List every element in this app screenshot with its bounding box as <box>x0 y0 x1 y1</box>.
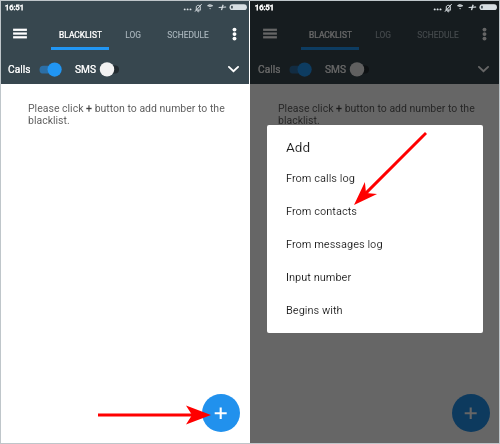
button[interactable]: More options <box>223 21 246 48</box>
button[interactable]: SCHEDULE <box>163 18 212 51</box>
staticText: SCHEDULE <box>417 30 459 40</box>
button[interactable]: From contacts <box>267 195 483 228</box>
button[interactable]: SCHEDULE <box>413 18 462 51</box>
staticText: Input number <box>286 271 352 284</box>
staticText: Add <box>286 139 311 155</box>
button[interactable]: LOG <box>115 18 151 51</box>
button[interactable]: BLACKLIST <box>300 18 360 51</box>
staticText: LOG <box>375 30 391 40</box>
button[interactable]: SMS filter toggle <box>96 60 124 78</box>
staticText: Calls <box>8 64 31 76</box>
staticText: Calls <box>258 64 281 76</box>
staticText: BLACKLIST <box>59 30 102 40</box>
button[interactable]: SMS filter toggle <box>346 60 374 78</box>
staticText: SCHEDULE <box>167 30 209 40</box>
button[interactable]: Expand filters <box>222 59 245 79</box>
staticText: Begins with <box>286 304 343 317</box>
button[interactable]: Calls filter toggle <box>36 60 64 78</box>
staticText: From calls log <box>286 172 355 185</box>
button[interactable]: Add number <box>202 394 240 432</box>
button[interactable]: BLACKLIST <box>50 18 110 51</box>
staticText: From contacts <box>286 205 357 218</box>
staticText: SMS <box>75 64 96 76</box>
button[interactable]: Add number <box>452 394 490 432</box>
staticText: 16:51 <box>5 3 24 12</box>
button[interactable]: Expand filters <box>472 59 495 79</box>
staticText: Please click + button to add number to t… <box>28 102 230 126</box>
button[interactable]: From messages log <box>267 228 483 261</box>
button[interactable]: Navigation menu <box>253 21 287 48</box>
staticText: SMS <box>325 64 346 76</box>
staticText: 16:51 <box>255 3 274 12</box>
staticText: Please click + button to add number to t… <box>278 102 480 126</box>
button[interactable]: Input number <box>267 261 483 294</box>
staticText: BLACKLIST <box>309 30 352 40</box>
staticText: From messages log <box>286 238 383 251</box>
button[interactable]: From calls log <box>267 162 483 195</box>
staticText: LOG <box>125 30 141 40</box>
button[interactable]: Begins with <box>267 294 483 327</box>
button[interactable]: More options <box>473 21 496 48</box>
button[interactable]: LOG <box>365 18 401 51</box>
button[interactable]: Calls filter toggle <box>286 60 314 78</box>
button[interactable]: Navigation menu <box>3 21 37 48</box>
staticText: 16:51 <box>255 3 274 12</box>
